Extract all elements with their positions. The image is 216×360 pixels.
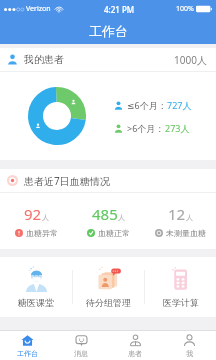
button[interactable]: 消息 (54, 331, 108, 360)
staticText: 血糖正常 (98, 228, 130, 238)
staticText: 727人 (167, 99, 192, 111)
staticText: 工作台 (17, 349, 38, 358)
staticText: 92 (24, 204, 42, 224)
staticText: Verizon (26, 4, 51, 14)
staticText: 人 (186, 213, 193, 222)
button[interactable]: 待分组管理 (73, 257, 144, 317)
staticText: 我的患者 (24, 53, 64, 66)
staticText: 100% (176, 4, 194, 14)
button[interactable]: 糖医课堂 (0, 257, 72, 317)
staticText: 糖医课堂 (18, 297, 54, 308)
button[interactable]: 485 (72, 204, 144, 238)
staticText: 医学计算 (163, 297, 199, 308)
staticText: 患者近7日血糖情况 (24, 174, 110, 188)
staticText: >6个月： (127, 122, 165, 134)
button[interactable]: 患者 (108, 331, 162, 360)
staticText: 工作台 (89, 23, 128, 39)
staticText: 消息 (74, 349, 88, 358)
button[interactable]: 医学计算 (145, 257, 216, 317)
staticText: 患者 (128, 349, 142, 358)
staticText: 人 (42, 213, 49, 222)
staticText: 485 (92, 204, 118, 224)
staticText: 1000人 (174, 53, 207, 67)
staticText: 我 (186, 349, 193, 358)
button[interactable]: 患者近7日血糖情况 (0, 169, 216, 192)
button[interactable]: 我 (162, 331, 216, 360)
staticText: 4:21 PM (104, 4, 135, 15)
staticText: 273人 (165, 122, 190, 134)
staticText: ≤6个月： (127, 99, 167, 111)
staticText: 人 (118, 213, 125, 222)
staticText: 待分组管理 (86, 297, 131, 308)
button[interactable]: 我的患者 (0, 48, 216, 71)
button[interactable]: 92 (0, 204, 72, 238)
button[interactable]: ≤6个月： (114, 99, 192, 111)
button[interactable]: 工作台 (0, 331, 54, 360)
button[interactable]: 12 (144, 204, 216, 238)
staticText: 未测量血糖 (166, 228, 206, 238)
staticText: 血糖异常 (26, 228, 58, 238)
button[interactable]: >6个月： (114, 122, 190, 134)
staticText: 12 (168, 204, 186, 224)
